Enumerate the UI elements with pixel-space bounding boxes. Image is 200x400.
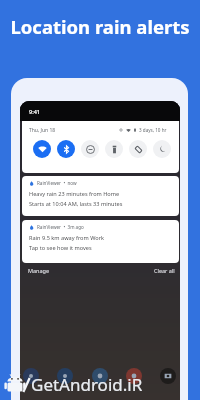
staticText: Tap to see how it moves xyxy=(29,244,92,252)
button[interactable]: Messages xyxy=(57,368,73,384)
button[interactable]: Clear all xyxy=(154,267,175,274)
button[interactable]: RainViewer • now xyxy=(22,176,179,216)
button[interactable]: Wi-Fi xyxy=(33,140,51,158)
staticText: Manage xyxy=(28,267,50,274)
button[interactable]: Browser xyxy=(92,368,108,384)
button[interactable]: Manage xyxy=(28,267,50,274)
staticText: RainViewer • 3m ago xyxy=(37,224,84,230)
staticText: GetAndroid.iR xyxy=(31,373,143,396)
staticText: Heavy rain 23 minutes from Home xyxy=(29,190,120,198)
staticText: Location rain alerts xyxy=(0,14,200,39)
staticText: RainViewer • now xyxy=(37,180,77,186)
staticText: 9:41 xyxy=(29,108,40,115)
button[interactable]: Flashlight xyxy=(105,140,123,158)
button[interactable]: Camera xyxy=(160,368,176,384)
button[interactable]: Do not disturb xyxy=(81,140,99,158)
button[interactable]: Phone xyxy=(23,368,39,384)
button[interactable]: Dark theme xyxy=(153,140,171,158)
staticText: Rain 9.5 km away from Work xyxy=(29,234,104,242)
staticText: Thu, Jun 18 xyxy=(29,127,56,134)
staticText: Starts at 10:04 AM, lasts 33 minutes xyxy=(29,200,123,208)
staticText: Clear all xyxy=(154,267,175,274)
staticText: 3 days, 10 hr xyxy=(139,127,167,133)
button[interactable]: Auto rotate xyxy=(129,140,147,158)
button[interactable]: Gallery xyxy=(126,368,142,384)
button[interactable]: RainViewer • 3m ago xyxy=(22,220,179,263)
button[interactable]: Bluetooth xyxy=(57,140,75,158)
